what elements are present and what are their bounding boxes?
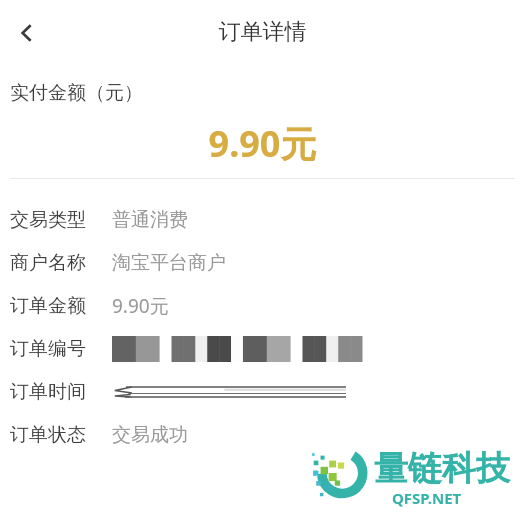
staticText: 订单状态 [10,423,86,447]
button[interactable]: 订单时间 [0,372,525,412]
staticText: 9.90元 [0,119,525,168]
staticText: 订单时间 [10,380,86,404]
staticText: 订单金额 [10,294,86,318]
staticText: 实付金额（元） [10,81,143,105]
button[interactable]: 交易类型 [0,200,525,240]
staticText: 订单编号 [10,337,86,361]
staticText: QFSP.NET [392,488,462,508]
staticText: 交易成功 [112,423,188,447]
staticText: 量链科技 [374,447,510,490]
staticText: 普通消费 [112,208,188,232]
button[interactable]: Back [2,8,52,58]
staticText: 订单详情 [0,18,525,46]
staticText: 淘宝平台商户 [112,251,226,275]
button[interactable]: 商户名称 [0,243,525,283]
button[interactable]: 订单状态 [0,415,525,455]
staticText: 9.90元 [112,293,169,319]
staticText: 商户名称 [10,251,86,275]
button[interactable]: 订单编号 [0,329,525,369]
button[interactable]: 订单金额 [0,286,525,326]
staticText: 交易类型 [10,208,86,232]
